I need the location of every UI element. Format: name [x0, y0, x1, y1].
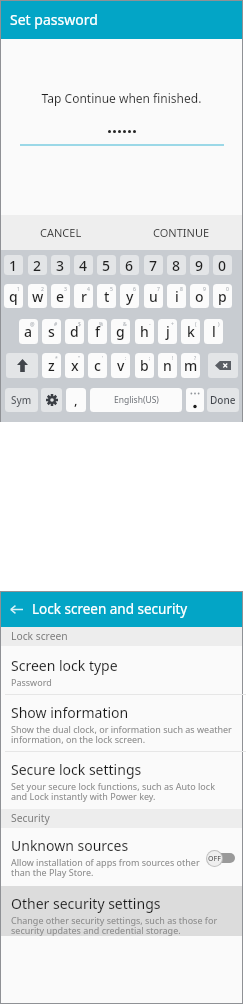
- staticText: 6: [133, 286, 136, 293]
- staticText: Other security settings: [11, 894, 161, 913]
- button[interactable]: i: [167, 284, 186, 308]
- button[interactable]: Backspace: [208, 353, 238, 378]
- button[interactable]: q: [4, 284, 23, 308]
- button[interactable]: Sym: [5, 388, 38, 412]
- staticText: Show the dual clock, or information such…: [11, 723, 232, 745]
- button[interactable]: p: [213, 284, 232, 308]
- staticText: English(US): [114, 394, 159, 406]
- button[interactable]: Set password: [1, 1, 242, 39]
- staticText: 8: [180, 286, 183, 293]
- button[interactable]: w: [28, 284, 47, 308]
- button[interactable]: ,: [66, 388, 86, 412]
- staticText: v: [117, 356, 125, 375]
- staticText: u: [149, 287, 158, 306]
- staticText: m: [184, 356, 198, 375]
- staticText: x: [71, 356, 79, 375]
- button[interactable]: 0: [213, 255, 232, 275]
- button[interactable]: Unknown sources off: [206, 848, 235, 868]
- button[interactable]: Back: [1, 592, 242, 627]
- button[interactable]: h: [135, 319, 154, 344]
- button[interactable]: n: [158, 353, 177, 378]
- button[interactable]: d: [65, 319, 84, 344]
- button[interactable]: a: [19, 319, 38, 344]
- button[interactable]: Show information: [1, 695, 242, 755]
- staticText: Change other security settings, such as …: [11, 914, 218, 936]
- staticText: 1: [17, 286, 20, 293]
- button[interactable]: o: [190, 284, 209, 308]
- button[interactable]: 5: [97, 255, 116, 275]
- staticText: 8: [172, 256, 181, 275]
- button[interactable]: l: [204, 319, 223, 344]
- button[interactable]: m: [181, 353, 200, 378]
- button[interactable]: CANCEL: [1, 215, 121, 250]
- staticText: k: [187, 322, 195, 341]
- staticText: Show information: [11, 703, 129, 722]
- button[interactable]: g: [111, 319, 130, 344]
- staticText: 3: [56, 256, 65, 275]
- button[interactable]: Secure lock settings: [1, 752, 242, 812]
- button[interactable]: t: [97, 284, 116, 308]
- staticText: Tap Continue when finished.: [1, 90, 242, 106]
- staticText: r: [81, 287, 87, 306]
- button[interactable]: z: [42, 353, 61, 378]
- button[interactable]: j: [158, 319, 177, 344]
- staticText: 9: [203, 286, 206, 293]
- staticText: CANCEL: [40, 225, 82, 240]
- staticText: $: [78, 321, 81, 328]
- button[interactable]: Back: [1, 592, 32, 627]
- staticText: q: [9, 287, 18, 306]
- staticText: !: [172, 355, 174, 362]
- staticText: +: [171, 321, 174, 328]
- button[interactable]: 6: [120, 255, 139, 275]
- button[interactable]: e: [51, 284, 70, 308]
- button[interactable]: v: [111, 353, 130, 378]
- button[interactable]: 3: [51, 255, 70, 275]
- button[interactable]: s: [42, 319, 61, 344]
- staticText: 7: [149, 256, 158, 275]
- button[interactable]: f: [88, 319, 107, 344]
- button[interactable]: Unknown sources: [1, 828, 242, 888]
- staticText: 3: [64, 286, 67, 293]
- button[interactable]: 2: [28, 255, 47, 275]
- staticText: 2: [41, 286, 44, 293]
- staticText: CONTINUE: [153, 225, 210, 240]
- staticText: 9: [195, 256, 204, 275]
- staticText: h: [140, 322, 149, 341]
- staticText: %: [99, 321, 104, 328]
- staticText: n: [163, 356, 172, 375]
- button[interactable]: y: [120, 284, 139, 308]
- staticText: Done: [210, 393, 236, 407]
- staticText: e: [56, 287, 65, 306]
- staticText: Set your secure lock functions, such as …: [11, 780, 215, 802]
- staticText: ;: [149, 355, 151, 362]
- staticText: &: [123, 321, 127, 328]
- button[interactable]: 8: [167, 255, 186, 275]
- button[interactable]: b: [135, 353, 154, 378]
- staticText: Sym: [11, 393, 32, 407]
- button[interactable]: c: [88, 353, 107, 378]
- button[interactable]: English(US): [90, 388, 182, 412]
- button[interactable]: x: [65, 353, 84, 378]
- button[interactable]: u: [144, 284, 163, 308]
- button[interactable]: 4: [74, 255, 93, 275]
- staticText: c: [94, 356, 101, 375]
- button[interactable]: k: [181, 319, 200, 344]
- button[interactable]: Done: [207, 388, 239, 412]
- button[interactable]: Keyboard settings: [41, 388, 62, 412]
- staticText: Screen lock type: [11, 656, 118, 675]
- staticText: -: [149, 321, 151, 328]
- button[interactable]: r: [74, 284, 93, 308]
- button[interactable]: 9: [190, 255, 209, 275]
- staticText: 6: [125, 256, 134, 275]
- staticText: Lock screen and security: [32, 600, 188, 618]
- staticText: #: [54, 321, 58, 328]
- button[interactable]: CONTINUE: [121, 215, 242, 250]
- button[interactable]: Other security settings: [1, 886, 242, 946]
- staticText: Secure lock settings: [11, 760, 142, 779]
- button[interactable]: [186, 388, 204, 412]
- button[interactable]: 7: [144, 255, 163, 275]
- button[interactable]: Screen lock type: [1, 648, 242, 698]
- button[interactable]: 1: [4, 255, 23, 275]
- button[interactable]: Shift: [6, 353, 38, 378]
- staticText: 2: [33, 256, 42, 275]
